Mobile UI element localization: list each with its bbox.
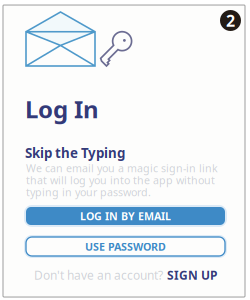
- staticText: USE PASSWORD: [85, 239, 166, 254]
- staticText: Log In: [25, 93, 99, 125]
- button[interactable]: USE PASSWORD: [26, 237, 225, 256]
- staticText: that will log you into the app without: [26, 173, 215, 187]
- staticText: Skip the Typing: [25, 144, 125, 162]
- staticText: We can email you a magic sign-in link: [26, 161, 218, 175]
- staticText: 2: [226, 10, 235, 31]
- staticText: Don't have an account?: [34, 267, 163, 283]
- button[interactable]: LOG IN BY EMAIL: [26, 207, 225, 225]
- staticText: LOG IN BY EMAIL: [80, 209, 171, 223]
- staticText: typing in your password.: [26, 185, 151, 199]
- button[interactable]: Don't have an account?: [26, 269, 225, 281]
- staticText: SIGN UP: [167, 267, 217, 283]
